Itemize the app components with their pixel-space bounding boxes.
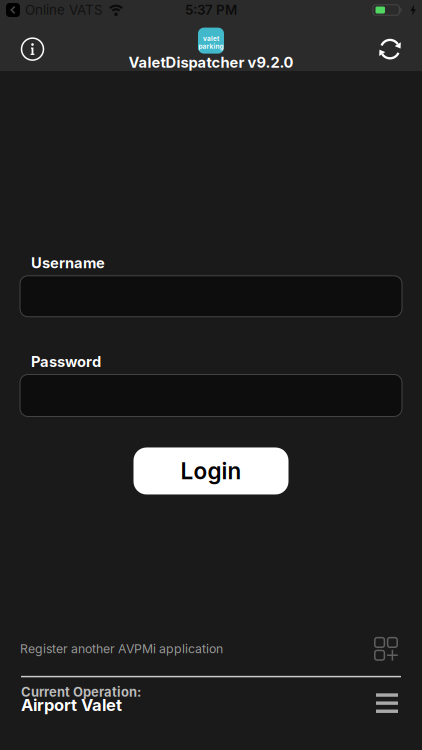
staticText: ValetDispatcher v9.2.0 — [128, 54, 293, 71]
staticText: Password — [31, 353, 101, 370]
staticText: Login — [180, 457, 241, 485]
staticText: Online VATS — [25, 2, 103, 18]
staticText: parking — [198, 43, 223, 50]
staticText: Register another AVPMi application — [20, 641, 223, 656]
staticText: Current Operation: — [21, 684, 141, 700]
staticText: Username — [31, 254, 105, 272]
staticText: 5:37 PM — [185, 2, 237, 18]
staticText: valet — [203, 35, 219, 43]
staticText: Airport Valet — [21, 695, 122, 715]
